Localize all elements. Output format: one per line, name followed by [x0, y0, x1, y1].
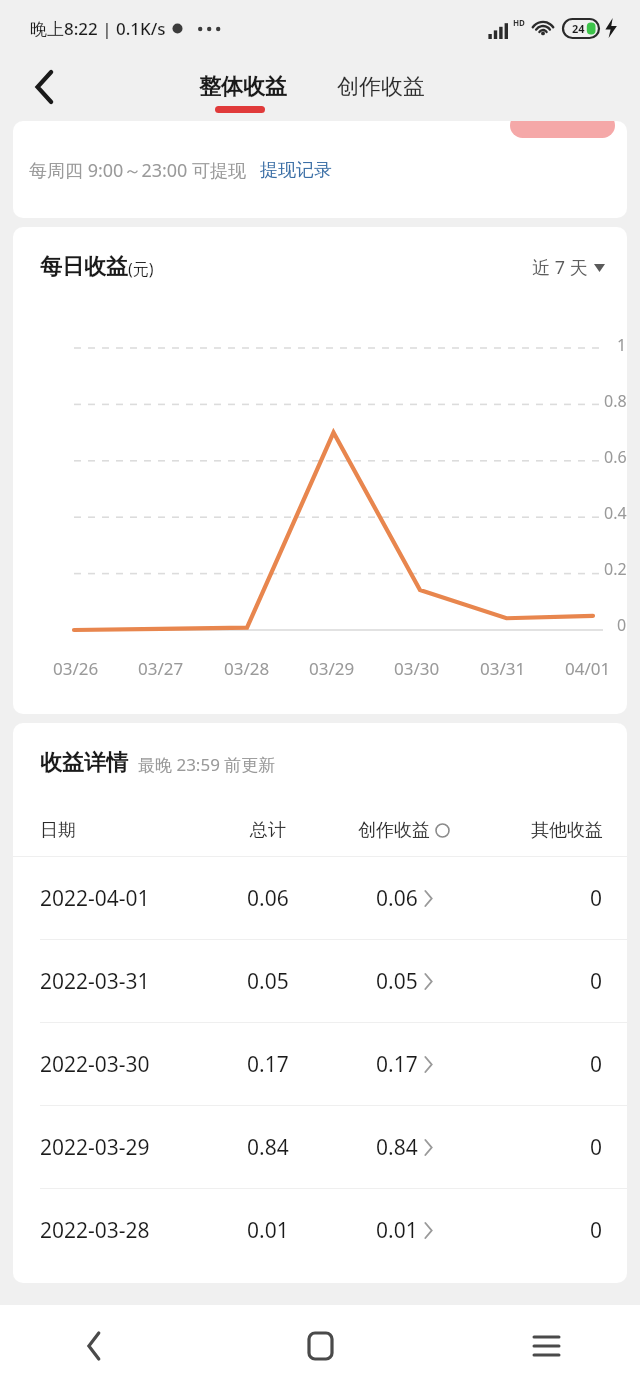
staticText: 0.84	[376, 1133, 418, 1162]
button[interactable]: Back	[18, 60, 72, 114]
button[interactable]: 2022-03-31	[13, 940, 627, 1022]
staticText: 03/28	[224, 657, 270, 680]
staticText: 0.01	[376, 1216, 418, 1245]
staticText: 0	[617, 614, 627, 636]
button[interactable]: Recents	[510, 1310, 582, 1382]
button[interactable]: 整体收益	[193, 73, 293, 101]
staticText: 2022-03-28	[40, 1216, 150, 1245]
staticText: 03/27	[138, 657, 184, 680]
staticText: 2022-03-30	[40, 1050, 150, 1079]
button[interactable]: Back	[58, 1310, 130, 1382]
staticText: 提现记录	[260, 159, 332, 182]
staticText: 日期	[40, 819, 76, 842]
staticText: 每周四 9:00～23:00 可提现	[29, 158, 247, 183]
staticText: 0.05	[376, 967, 418, 996]
staticText: 03/31	[480, 657, 526, 680]
staticText: 0.06	[247, 884, 289, 913]
button[interactable]: 创作收益	[331, 73, 431, 101]
staticText: 近 7 天	[532, 255, 588, 280]
staticText: 晚上8:22 | 0.1K/s	[30, 17, 166, 40]
button[interactable]: 2022-04-01	[13, 857, 627, 939]
staticText: 每日收益	[40, 253, 128, 281]
staticText: 0	[590, 884, 603, 913]
staticText: 最晚 23:59 前更新	[138, 753, 276, 776]
staticText: 2022-03-29	[40, 1133, 150, 1162]
staticText: 1	[617, 334, 627, 356]
staticText: 创作收益	[358, 819, 430, 842]
staticText: 其他收益	[531, 819, 603, 842]
staticText: 03/29	[309, 657, 355, 680]
staticText: 0	[590, 1050, 603, 1079]
button[interactable]: 每周四 9:00～23:00 可提现	[13, 121, 627, 218]
staticText: 03/30	[394, 657, 440, 680]
staticText: 收益详情	[40, 749, 128, 777]
button[interactable]: 近 7 天	[532, 255, 605, 280]
button[interactable]: 2022-03-28	[13, 1189, 627, 1271]
staticText: (元)	[128, 258, 154, 280]
staticText: 24	[572, 21, 585, 36]
staticText: 0.01	[247, 1216, 289, 1245]
button[interactable]: 提现记录	[260, 159, 332, 182]
staticText: 0.84	[247, 1133, 289, 1162]
staticText: 0.06	[376, 884, 418, 913]
button[interactable]: Home	[284, 1310, 356, 1382]
staticText: 0.05	[247, 967, 289, 996]
staticText: 2022-03-31	[40, 967, 150, 996]
staticText: 2022-04-01	[40, 884, 150, 913]
staticText: 0.6	[604, 446, 627, 468]
staticText: 整体收益	[199, 73, 287, 101]
staticText: 0	[590, 967, 603, 996]
staticText: 创作收益	[337, 73, 425, 101]
staticText: 0.4	[604, 502, 627, 524]
staticText: 0.2	[604, 558, 627, 580]
button[interactable]: 2022-03-30	[13, 1023, 627, 1105]
staticText: 0.17	[247, 1050, 289, 1079]
button[interactable]: 2022-03-29	[13, 1106, 627, 1188]
staticText: 04/01	[565, 657, 611, 680]
staticText: 0.8	[604, 390, 627, 412]
staticText: 0	[590, 1133, 603, 1162]
staticText: 03/26	[53, 657, 99, 680]
staticText: 0	[590, 1216, 603, 1245]
staticText: 总计	[250, 819, 286, 842]
staticText: 0.17	[376, 1050, 418, 1079]
staticText: HD	[513, 17, 525, 28]
